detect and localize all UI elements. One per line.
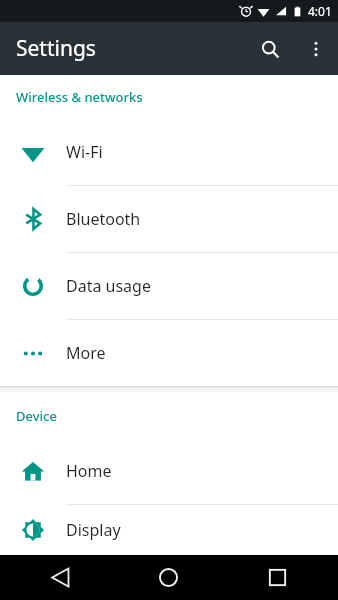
staticText: Device [16,407,57,425]
button[interactable]: Recent apps [254,555,300,600]
staticText: 4:01 [308,3,332,19]
button[interactable]: Data usage [0,253,338,320]
staticText: Home [66,460,112,482]
staticText: Display [66,519,121,541]
button[interactable]: Home [145,555,191,600]
staticText: Wireless & networks [16,88,143,106]
button[interactable]: Wi-Fi [0,119,338,186]
button[interactable]: Back [37,555,83,600]
staticText: Bluetooth [66,208,141,230]
button[interactable]: Home [0,438,338,505]
button[interactable]: Display [0,505,338,555]
button[interactable]: More [0,320,338,386]
staticText: Data usage [66,275,151,297]
staticText: Settings [16,34,96,63]
staticText: Wi-Fi [66,141,103,163]
button[interactable]: Search [246,25,294,73]
button[interactable]: More options [294,27,338,71]
button[interactable]: Bluetooth [0,186,338,253]
staticText: More [66,342,106,364]
